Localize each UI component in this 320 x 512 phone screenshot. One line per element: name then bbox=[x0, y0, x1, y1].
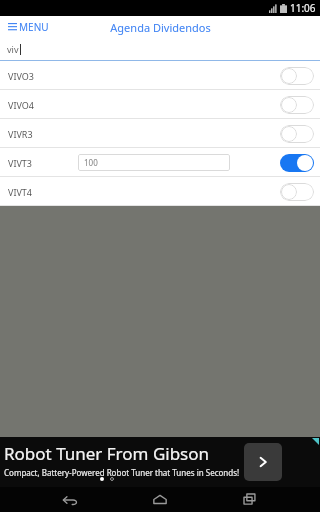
button[interactable]: Toggle off bbox=[280, 125, 314, 143]
button[interactable]: VIVR3 bbox=[0, 119, 320, 148]
staticText: Compact, Battery-Powered Robot Tuner tha… bbox=[4, 467, 240, 478]
button[interactable]: VIVO4 bbox=[0, 90, 320, 119]
button[interactable]: Robot Tuner From Gibson bbox=[0, 437, 320, 487]
staticText: VIVR3 bbox=[8, 128, 33, 140]
button[interactable]: VIVT4 bbox=[0, 177, 320, 206]
button[interactable]: Back bbox=[50, 487, 90, 512]
staticText: viv bbox=[7, 43, 19, 55]
button[interactable]: Open ad bbox=[244, 443, 282, 481]
staticText: VIVT4 bbox=[8, 186, 33, 198]
button[interactable]: Home bbox=[140, 487, 180, 512]
button[interactable]: Recents bbox=[230, 487, 270, 512]
staticText: VIVO3 bbox=[8, 70, 34, 82]
staticText: 100 bbox=[84, 157, 98, 168]
button[interactable]: Toggle off bbox=[280, 96, 314, 114]
button[interactable]: MENU bbox=[6, 18, 51, 36]
staticText: 11:06 bbox=[290, 1, 316, 15]
button[interactable]: viv bbox=[0, 38, 320, 60]
button[interactable]: VIVT3 bbox=[0, 148, 320, 177]
button[interactable]: Toggle off bbox=[280, 67, 314, 85]
button[interactable]: Toggle on bbox=[280, 154, 314, 172]
staticText: Agenda Dividendos bbox=[110, 20, 211, 35]
button[interactable]: VIVO3 bbox=[0, 61, 320, 90]
button[interactable]: 100 bbox=[78, 154, 230, 171]
staticText: Robot Tuner From Gibson bbox=[4, 442, 210, 465]
button[interactable]: Toggle off bbox=[280, 183, 314, 201]
staticText: MENU bbox=[19, 20, 49, 34]
staticText: VIVO4 bbox=[8, 99, 34, 111]
staticText: VIVT3 bbox=[8, 157, 33, 169]
